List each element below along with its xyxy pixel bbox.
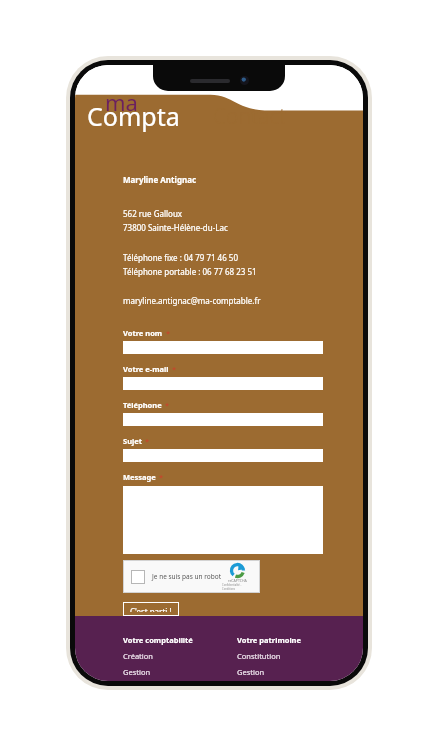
- staticText: *: [166, 328, 171, 338]
- staticText: Confidentialité - Conditions: [222, 583, 252, 591]
- button[interactable]: Création: [123, 651, 153, 661]
- staticText: C'est parti !: [130, 606, 172, 612]
- staticText: ma: [105, 87, 138, 117]
- staticText: Contact: [213, 102, 287, 131]
- staticText: maryline.antignac@ma-comptable.fr: [123, 295, 261, 306]
- staticText: Compta: [87, 99, 180, 133]
- staticText: Gestion: [237, 667, 265, 677]
- staticText: Je ne suis pas un robot: [152, 572, 222, 581]
- staticText: Création: [123, 651, 153, 661]
- staticText: Votre patrimoine: [237, 635, 301, 645]
- staticText: reCAPTCHA: [228, 578, 247, 583]
- staticText: *: [159, 472, 164, 482]
- staticText: Gestion: [123, 667, 151, 677]
- staticText: Téléphone fixe : 04 79 71 46 50: [123, 252, 238, 263]
- staticText: Votre comptabilité: [123, 635, 193, 645]
- button[interactable]: Gestion: [123, 667, 151, 677]
- staticText: Téléphone: [123, 400, 162, 410]
- staticText: 73800 Sainte-Hélène-du-Lac: [123, 222, 228, 233]
- staticText: 562 rue Galloux: [123, 208, 183, 219]
- staticText: Votre e-mail: [123, 364, 169, 374]
- button[interactable]: C'est parti !: [130, 606, 172, 612]
- staticText: Message: [123, 472, 156, 482]
- staticText: Votre nom: [123, 328, 163, 338]
- button[interactable]: Je ne suis pas un robot: [123, 560, 260, 593]
- button[interactable]: Constitution: [237, 651, 281, 661]
- staticText: *: [172, 364, 177, 374]
- staticText: *: [165, 400, 170, 410]
- button[interactable]: Gestion: [237, 667, 265, 677]
- staticText: Sujet: [123, 436, 142, 446]
- staticText: Constitution: [237, 651, 281, 661]
- staticText: *: [145, 436, 150, 446]
- staticText: Maryline Antignac: [123, 174, 197, 185]
- staticText: Téléphone portable : 06 77 68 23 51: [123, 266, 257, 277]
